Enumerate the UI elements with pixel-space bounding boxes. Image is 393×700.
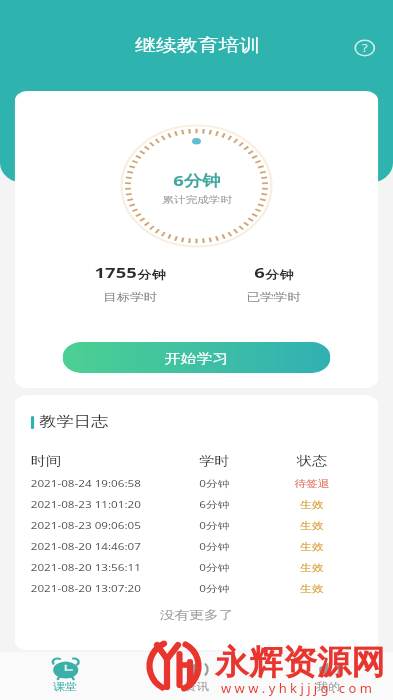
button[interactable]: 我的 — [262, 656, 393, 696]
staticText: 2021-08-24 19:06:58 — [31, 477, 141, 490]
staticText: w w w . y h k j j j g . c o m — [221, 679, 372, 697]
button[interactable]: Help — [352, 38, 377, 58]
staticText: 分钟 — [265, 268, 293, 282]
staticText: 累计完成学时 — [162, 194, 232, 206]
staticText: 永辉资源网 — [215, 641, 385, 684]
staticText: 2021-08-20 13:56:11 — [31, 561, 141, 574]
staticText: 0分钟 — [151, 477, 278, 490]
staticText: 1755 — [95, 262, 138, 282]
button[interactable]: 开始学习 — [63, 342, 330, 373]
staticText: 生效 — [262, 520, 362, 532]
staticText: ? — [362, 41, 368, 55]
staticText: 0分钟 — [151, 561, 278, 574]
staticText: 6分钟 — [151, 498, 278, 511]
staticText: 2021-08-20 14:46:07 — [31, 540, 141, 553]
staticText: 我的 — [316, 680, 340, 693]
staticText: 状态 — [262, 453, 362, 469]
staticText: 时间 — [31, 453, 61, 469]
staticText: 开始学习 — [165, 350, 228, 366]
button[interactable]: 2021-08-20 13:07:20 — [15, 582, 378, 595]
button[interactable]: 时间 — [15, 453, 378, 469]
button[interactable]: 2021-08-23 11:01:20 — [15, 498, 378, 511]
staticText: 目标学时 — [103, 290, 157, 304]
staticText: 2021-08-23 11:01:20 — [31, 498, 141, 511]
button[interactable]: 2021-08-24 19:06:58 — [15, 477, 378, 490]
staticText: 没有更多了 — [15, 607, 378, 622]
staticText: 课堂 — [53, 680, 77, 693]
staticText: 6分钟 — [173, 170, 221, 190]
staticText: 学时 — [151, 453, 278, 469]
button[interactable]: 2021-08-20 13:56:11 — [15, 561, 378, 574]
staticText: 继续教育培训 — [135, 35, 260, 56]
staticText: 生效 — [262, 583, 362, 595]
button[interactable]: 2021-08-20 14:46:07 — [15, 540, 378, 553]
button[interactable]: 2021-08-23 09:06:05 — [15, 519, 378, 532]
staticText: 已学学时 — [247, 290, 301, 304]
button[interactable]: 课堂 — [0, 656, 130, 696]
staticText: 6 — [254, 262, 265, 282]
staticText: 2021-08-23 09:06:05 — [31, 519, 141, 532]
staticText: 0分钟 — [151, 540, 278, 553]
staticText: 0分钟 — [151, 582, 278, 595]
staticText: 2021-08-20 13:07:20 — [31, 582, 141, 595]
staticText: 生效 — [262, 562, 362, 574]
staticText: 待签退 — [262, 478, 362, 490]
staticText: 0分钟 — [151, 519, 278, 532]
staticText: 生效 — [262, 499, 362, 511]
staticText: 教学日志 — [39, 413, 108, 431]
staticText: 分钟 — [138, 268, 166, 282]
button[interactable]: 资讯 — [130, 656, 262, 696]
staticText: 资讯 — [184, 680, 209, 693]
staticText: 生效 — [262, 541, 362, 553]
